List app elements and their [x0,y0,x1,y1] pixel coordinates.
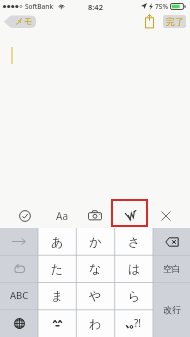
staticText: 空白 [163,263,181,274]
staticText: ら [128,288,141,303]
button[interactable]: Next [0,228,38,255]
staticText: 75% [155,2,168,11]
button[interactable]: Close [156,206,176,226]
button[interactable]: Undo [0,255,38,282]
button[interactable]: Handwriting [112,200,147,226]
button[interactable]: Globe [0,309,38,337]
button[interactable]: Space [153,255,190,282]
button[interactable]: Aa [52,207,72,225]
staticText: は [128,261,141,276]
button[interactable]: ら [115,282,153,309]
staticText: な [89,261,102,276]
staticText: 改行 [163,304,181,315]
button[interactable]: は [115,255,153,282]
staticText: ABC [10,289,29,302]
button[interactable]: Return [153,282,190,337]
staticText: た [51,261,64,276]
staticText: や [89,288,102,303]
button[interactable]: メモ [3,15,36,28]
staticText: 8:42 [88,2,103,12]
staticText: ?! [134,316,142,330]
button[interactable]: か [76,228,114,255]
button[interactable]: ABC [0,282,38,309]
staticText: あ [51,234,64,249]
button[interactable]: な [76,255,114,282]
button[interactable]: わ [76,309,114,337]
staticText: ま [51,288,64,303]
button[interactable]: あ [38,228,76,255]
button[interactable]: や [76,282,114,309]
button[interactable]: Checklist [15,206,35,226]
staticText: わ [89,316,102,331]
staticText: メモ [15,16,33,27]
button[interactable]: Small kana [38,309,76,337]
button[interactable]: ま [38,282,76,309]
staticText: Aa [56,209,68,223]
button[interactable]: Delete [153,228,190,255]
button[interactable]: 、。?! [115,309,153,337]
staticText: SoftBank [25,2,54,11]
button[interactable]: さ [115,228,153,255]
button[interactable]: Camera [85,206,105,226]
button[interactable]: 完了 [163,15,186,28]
staticText: か [89,234,102,249]
button[interactable]: た [38,255,76,282]
staticText: 完了 [166,16,184,27]
staticText: さ [128,234,141,249]
button[interactable]: Share [144,13,155,29]
